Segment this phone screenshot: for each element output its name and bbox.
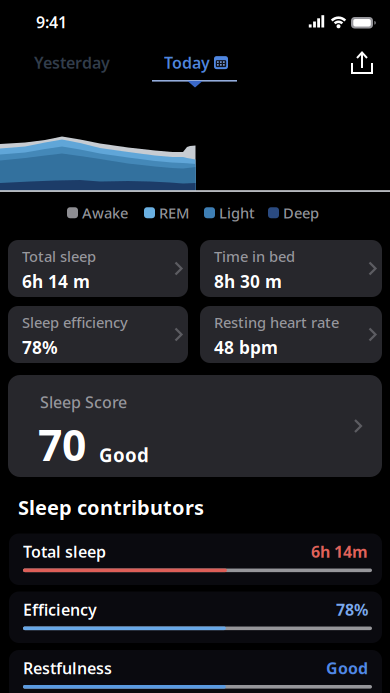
button[interactable]: Today xyxy=(164,52,228,73)
button[interactable]: Share xyxy=(338,47,382,79)
staticText: 9:41 xyxy=(36,11,67,33)
staticText: Good xyxy=(99,442,149,467)
button[interactable]: Total sleep xyxy=(8,240,188,297)
staticText: 70 xyxy=(38,416,86,473)
button[interactable]: Resting heart rate xyxy=(200,306,382,363)
button[interactable]: Sleep efficiency xyxy=(8,306,188,363)
staticText: REM xyxy=(159,203,189,222)
staticText: Good xyxy=(326,657,368,679)
staticText: Efficiency xyxy=(23,599,97,620)
staticText: Yesterday xyxy=(34,52,110,73)
staticText: Resting heart rate xyxy=(214,313,339,332)
staticText: Today xyxy=(164,52,210,73)
staticText: Awake xyxy=(82,203,128,222)
staticText: 8h 30 m xyxy=(214,270,282,293)
staticText: Total sleep xyxy=(23,541,106,562)
staticText: Deep xyxy=(283,203,319,222)
staticText: 6h 14m xyxy=(311,541,368,562)
staticText: 48 bpm xyxy=(214,336,278,359)
staticText: Total sleep xyxy=(22,247,96,266)
button[interactable]: Sleep Score xyxy=(8,375,382,477)
staticText: Time in bed xyxy=(214,247,295,266)
staticText: 78% xyxy=(336,599,368,620)
staticText: 6h 14 m xyxy=(22,270,90,293)
staticText: Light xyxy=(219,203,255,222)
button[interactable]: Time in bed xyxy=(200,240,382,297)
staticText: 78% xyxy=(22,336,58,359)
staticText: Sleep efficiency xyxy=(22,313,128,332)
staticText: Sleep Score xyxy=(40,391,127,412)
staticText: Restfulness xyxy=(23,657,112,679)
button[interactable]: Yesterday xyxy=(34,52,110,73)
staticText: Sleep contributors xyxy=(18,494,204,521)
